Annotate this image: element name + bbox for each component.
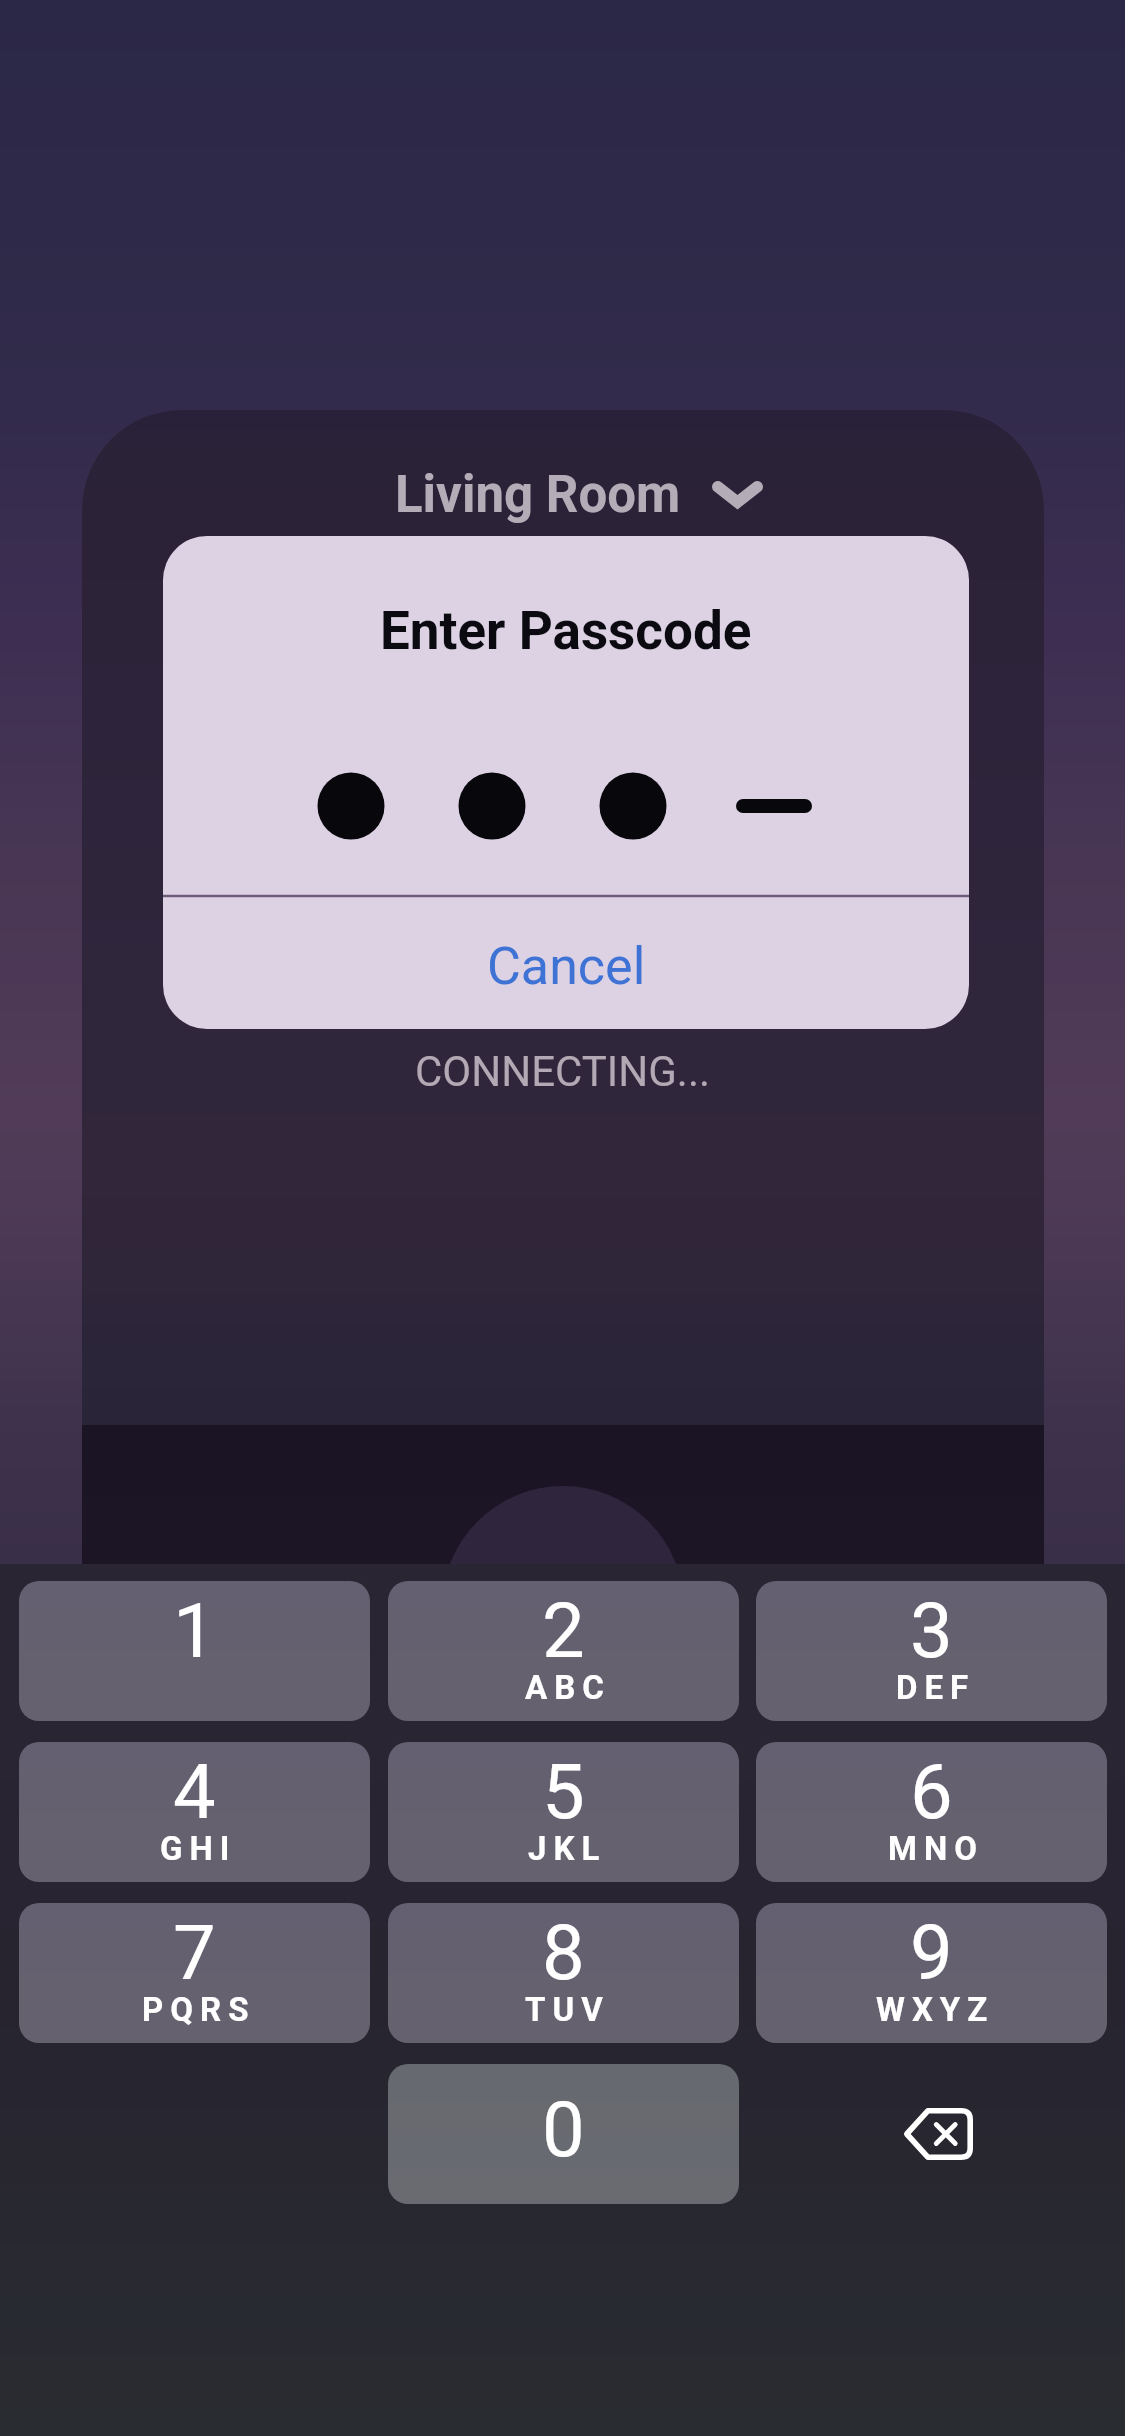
staticText: WXYZ (876, 1990, 995, 2029)
button[interactable]: 9 (756, 1903, 1107, 2043)
staticText: Enter Passcode (380, 600, 752, 660)
staticText: 2 (542, 1586, 585, 1675)
button[interactable]: 5 (388, 1742, 739, 1882)
staticText: 3 (910, 1586, 953, 1675)
staticText: MNO (888, 1829, 984, 1868)
staticText: 0 (542, 2085, 585, 2174)
staticText: ABC (525, 1668, 611, 1707)
staticText: DEF (896, 1668, 976, 1707)
button[interactable]: 2 (388, 1581, 739, 1721)
staticText: JKL (528, 1829, 607, 1868)
button[interactable]: 8 (388, 1903, 739, 2043)
button[interactable]: Living Room (380, 455, 780, 537)
staticText: TUV (525, 1990, 610, 2029)
staticText: 4 (173, 1747, 216, 1836)
button[interactable]: 4 (19, 1742, 370, 1882)
staticText: 7 (173, 1908, 216, 1997)
staticText: GHI (160, 1829, 237, 1868)
button[interactable]: Cancel (163, 900, 969, 1029)
button[interactable]: 0 (388, 2064, 739, 2204)
button[interactable]: 3 (756, 1581, 1107, 1721)
staticText: 8 (542, 1908, 585, 1997)
staticText: CONNECTING... (415, 1047, 711, 1096)
button[interactable]: 1 (19, 1581, 370, 1721)
staticText: 9 (910, 1908, 953, 1997)
button[interactable]: 7 (19, 1903, 370, 2043)
button[interactable]: Delete (756, 2064, 1107, 2204)
button[interactable]: 6 (756, 1742, 1107, 1882)
staticText: 6 (910, 1747, 953, 1836)
staticText: Cancel (487, 936, 646, 997)
staticText: Living Room (395, 465, 681, 525)
staticText: PQRS (142, 1990, 256, 2029)
staticText: 1 (173, 1586, 216, 1675)
staticText: 5 (542, 1747, 585, 1836)
